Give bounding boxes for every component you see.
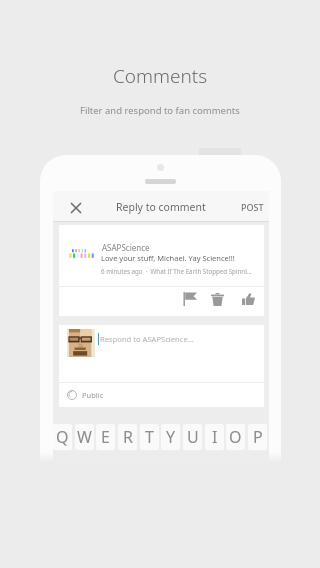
staticText: Public: [82, 390, 104, 400]
staticText: Love your stuff, Michael. Yay Science!!!: [101, 253, 235, 263]
staticText: W: [77, 426, 92, 448]
staticText: POST: [241, 201, 264, 213]
staticText: U: [187, 426, 199, 448]
button[interactable]: P: [248, 424, 267, 450]
staticText: O: [229, 426, 242, 448]
staticText: Reply to comment: [116, 200, 206, 214]
button[interactable]: U: [183, 424, 202, 450]
button[interactable]: E: [96, 424, 115, 450]
staticText: I: [212, 426, 218, 448]
button[interactable]: Public: [67, 387, 104, 402]
staticText: T: [145, 426, 154, 448]
button[interactable]: Flag: [180, 289, 200, 309]
staticText: Comments: [113, 63, 208, 89]
button[interactable]: Delete: [207, 289, 227, 309]
staticText: ASAPScience: [102, 242, 150, 253]
button[interactable]: O: [226, 424, 245, 450]
staticText: E: [101, 426, 110, 448]
button[interactable]: POST: [241, 201, 264, 213]
staticText: Filter and respond to fan comments: [80, 104, 240, 117]
button[interactable]: I: [205, 424, 224, 450]
staticText: Respond to ASAPScience...: [100, 334, 194, 344]
button[interactable]: Q: [53, 424, 72, 450]
button[interactable]: R: [118, 424, 137, 450]
button[interactable]: W: [75, 424, 94, 450]
staticText: P: [253, 426, 263, 448]
staticText: Y: [166, 426, 176, 448]
staticText: R: [123, 426, 133, 448]
button[interactable]: Close: [64, 196, 87, 219]
staticText: Q: [56, 426, 69, 448]
button[interactable]: T: [140, 424, 159, 450]
button[interactable]: Like: [238, 289, 258, 309]
staticText: 6 minutes ago · What If The Earth Stoppe…: [101, 267, 252, 275]
button[interactable]: Y: [161, 424, 180, 450]
